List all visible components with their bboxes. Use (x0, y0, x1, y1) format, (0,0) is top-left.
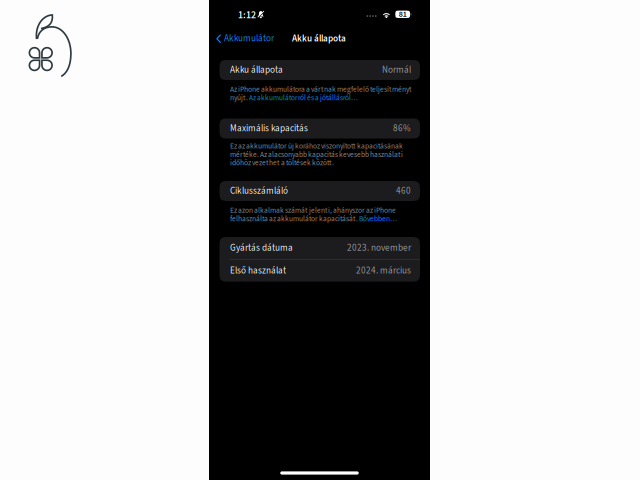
staticText: Az iPhone akkumulátora a vártnak megfele… (230, 84, 412, 95)
staticText: Maximális kapacitás (230, 122, 308, 135)
staticText: Akku állapota (230, 63, 283, 76)
button[interactable]: Gyártás dátuma (219, 237, 420, 259)
staticText: 86% (393, 122, 411, 135)
staticText: Ez az akkumulátor új korához viszonyítot… (230, 141, 403, 151)
staticText: Gyártás dátuma (230, 241, 293, 254)
staticText: Normál (382, 63, 411, 76)
button[interactable]: Első használat (219, 260, 420, 282)
staticText: Akkumulátor (224, 32, 274, 45)
staticText: 81 (399, 8, 407, 20)
staticText: 460 (396, 184, 411, 197)
staticText: Az akkumulátorról és a jótállásról… (249, 93, 358, 103)
staticText: Első használat (230, 264, 286, 277)
staticText: 2024. március (356, 264, 411, 277)
staticText: Ciklusszámláló (230, 184, 288, 197)
staticText: felhasználta az akkumulátor kapacitását. (230, 214, 359, 224)
staticText: Ez azon alkalmak számát jelenti, ahánysz… (230, 205, 396, 216)
staticText: 1:12 (238, 8, 256, 22)
staticText: Akku állapota (292, 32, 346, 45)
staticText: időhöz vezethet a töltések között. (230, 158, 334, 168)
button[interactable]: Maximális kapacitás (219, 118, 420, 138)
button[interactable]: Akku állapota (219, 60, 420, 80)
button[interactable]: Akkumulátor (209, 30, 279, 47)
staticText: mértéke. Az alacsonyabb kapacitás kevese… (230, 149, 403, 160)
staticText: Bővebben… (359, 214, 397, 224)
button[interactable]: Ciklusszámláló (219, 181, 420, 201)
staticText: 2023. november (347, 241, 411, 254)
staticText: nyújt. (230, 93, 249, 103)
